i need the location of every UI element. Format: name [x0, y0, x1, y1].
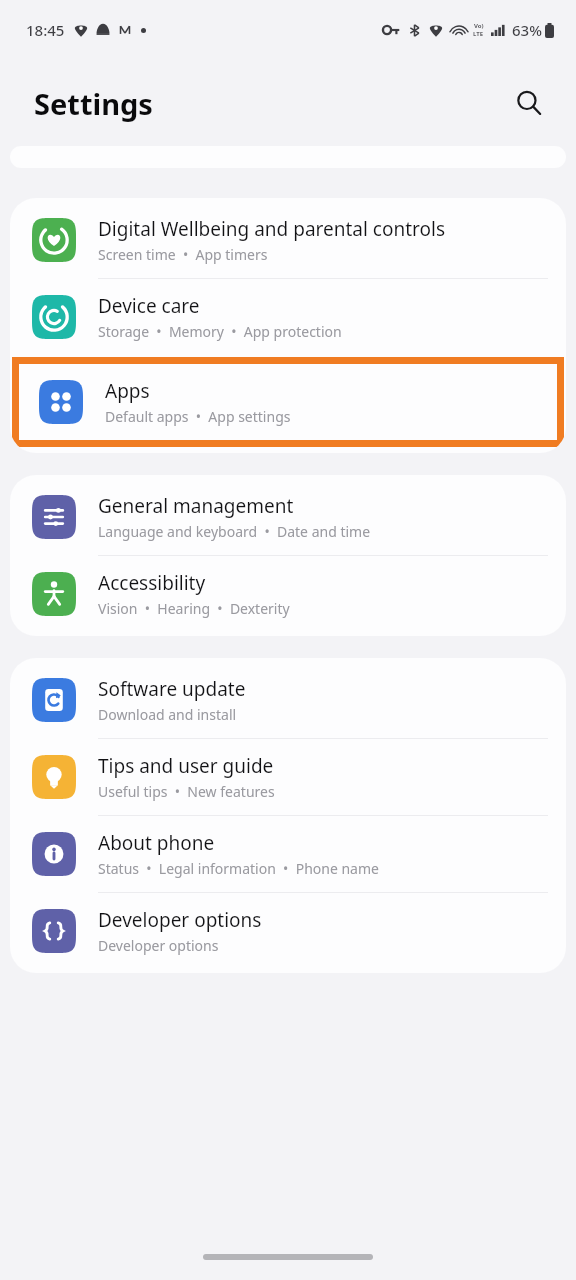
staticText: General management: [98, 493, 294, 519]
staticText: 18:45: [26, 20, 65, 40]
staticText: Tips and user guide: [98, 753, 274, 779]
staticText: Default apps • App settings: [105, 407, 291, 426]
button[interactable]: Accessibility: [10, 556, 566, 632]
staticText: Device care: [98, 293, 200, 319]
staticText: Vo): [474, 22, 484, 30]
staticText: Software update: [98, 676, 246, 702]
staticText: Developer options: [98, 907, 262, 933]
staticText: Storage • Memory • App protection: [98, 322, 342, 341]
staticText: Language and keyboard • Date and time: [98, 522, 371, 541]
button[interactable]: Search: [506, 80, 552, 126]
button[interactable]: General management: [10, 479, 566, 556]
staticText: 63%: [512, 20, 542, 40]
staticText: Download and install: [98, 705, 237, 724]
button[interactable]: Tips and user guide: [10, 739, 566, 816]
button[interactable]: Device care: [10, 279, 566, 355]
button[interactable]: Apps: [19, 364, 557, 440]
staticText: Accessibility: [98, 570, 206, 596]
staticText: Digital Wellbeing and parental controls: [98, 216, 446, 242]
staticText: LTE: [473, 30, 484, 38]
staticText: Vision • Hearing • Dexterity: [98, 599, 290, 618]
staticText: Developer options: [98, 936, 219, 955]
button[interactable]: Software update: [10, 662, 566, 739]
staticText: Status • Legal information • Phone name: [98, 859, 379, 878]
staticText: Settings: [34, 84, 153, 123]
button[interactable]: Developer options: [10, 893, 566, 969]
staticText: Useful tips • New features: [98, 782, 275, 801]
staticText: Screen time • App timers: [98, 245, 268, 264]
button[interactable]: Digital Wellbeing and parental controls: [10, 202, 566, 279]
staticText: Apps: [105, 378, 150, 404]
staticText: About phone: [98, 830, 215, 856]
button[interactable]: About phone: [10, 816, 566, 893]
